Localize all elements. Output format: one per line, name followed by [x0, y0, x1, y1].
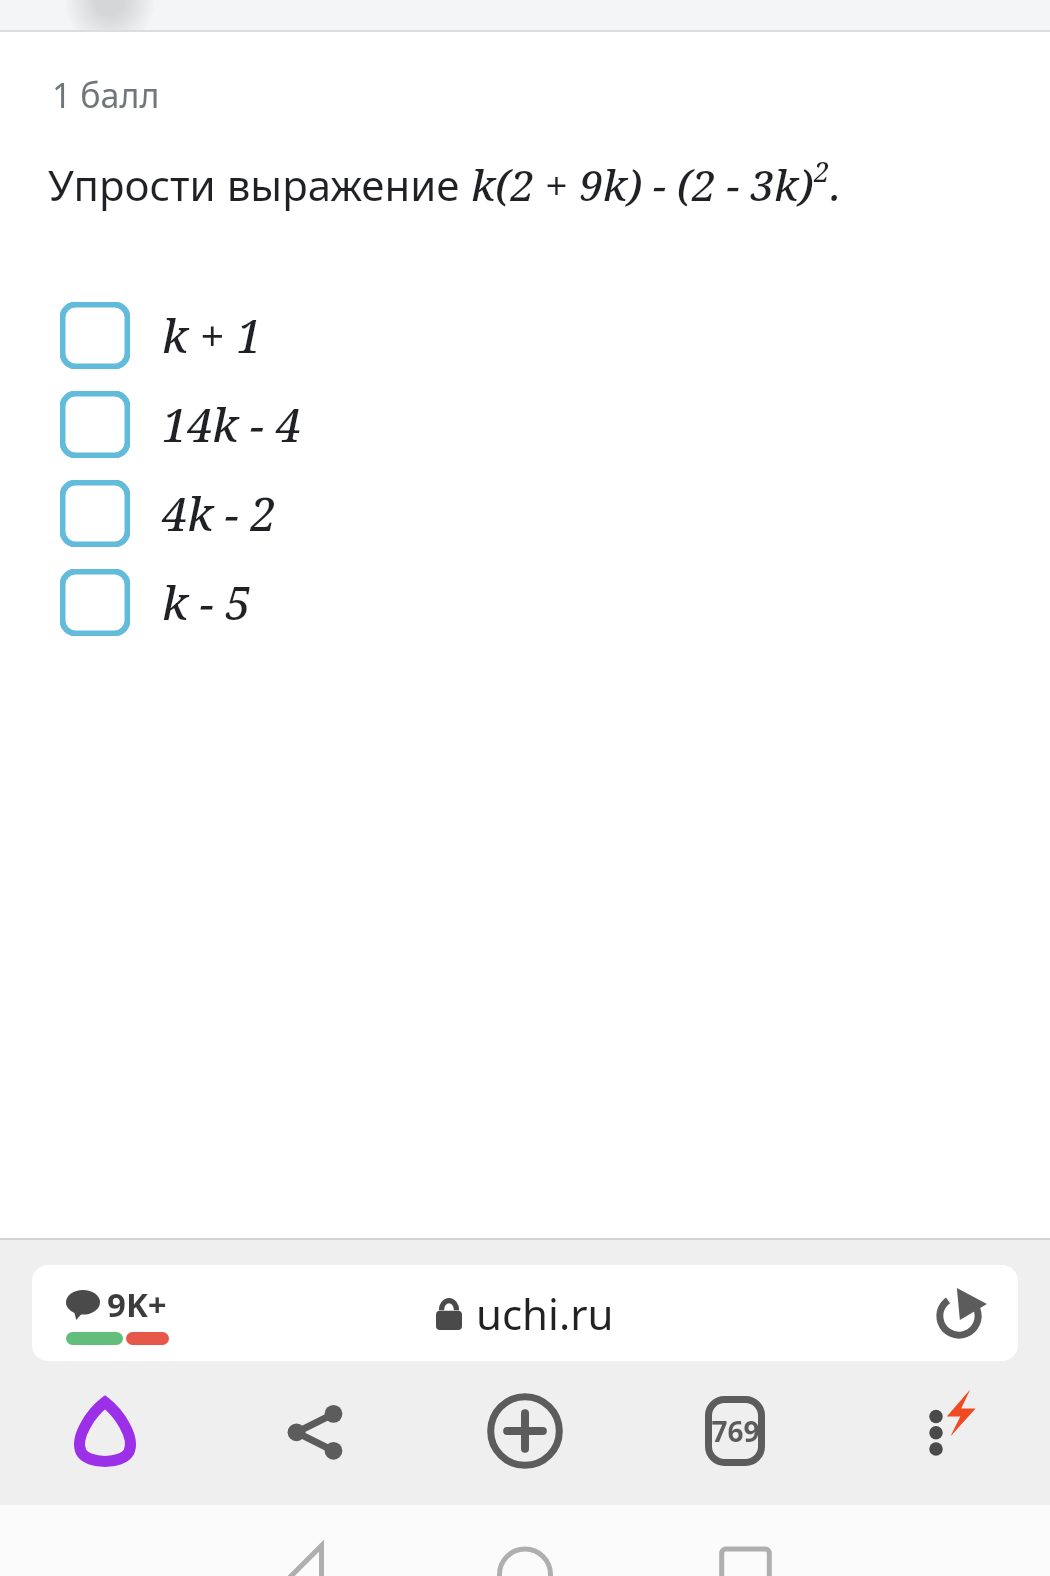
staticText: 1 балл — [52, 72, 160, 118]
staticText: 2 — [814, 153, 830, 190]
staticText: 14k − 4 — [162, 394, 301, 455]
button[interactable]: 14k − 4 — [0, 380, 1050, 469]
staticText: k − 5 — [162, 572, 251, 633]
staticText: k + 1 — [162, 305, 262, 366]
staticText: . — [830, 156, 842, 213]
staticText: 4k − 2 — [162, 483, 276, 544]
button[interactable]: Reload — [930, 1284, 988, 1342]
button[interactable]: New tab — [420, 1375, 630, 1487]
button[interactable]: Tabs, 769 open — [630, 1375, 840, 1487]
button[interactable]: k + 1 — [0, 291, 1050, 380]
staticText: 769 — [711, 1412, 760, 1450]
button[interactable]: Aria assistant — [0, 1375, 210, 1487]
staticText: 9K+ — [107, 1282, 167, 1327]
button[interactable]: Share — [210, 1375, 420, 1487]
staticText: Упрости выражение — [48, 156, 471, 213]
staticText: k(2 + 9k) − (2 − 3k) — [471, 156, 814, 213]
staticText: uchi.ru — [476, 1285, 614, 1342]
button[interactable]: k − 5 — [0, 558, 1050, 647]
button[interactable]: More options — [840, 1375, 1050, 1487]
button[interactable]: 4k − 2 — [0, 469, 1050, 558]
button[interactable]: 9K+ — [32, 1265, 1018, 1361]
